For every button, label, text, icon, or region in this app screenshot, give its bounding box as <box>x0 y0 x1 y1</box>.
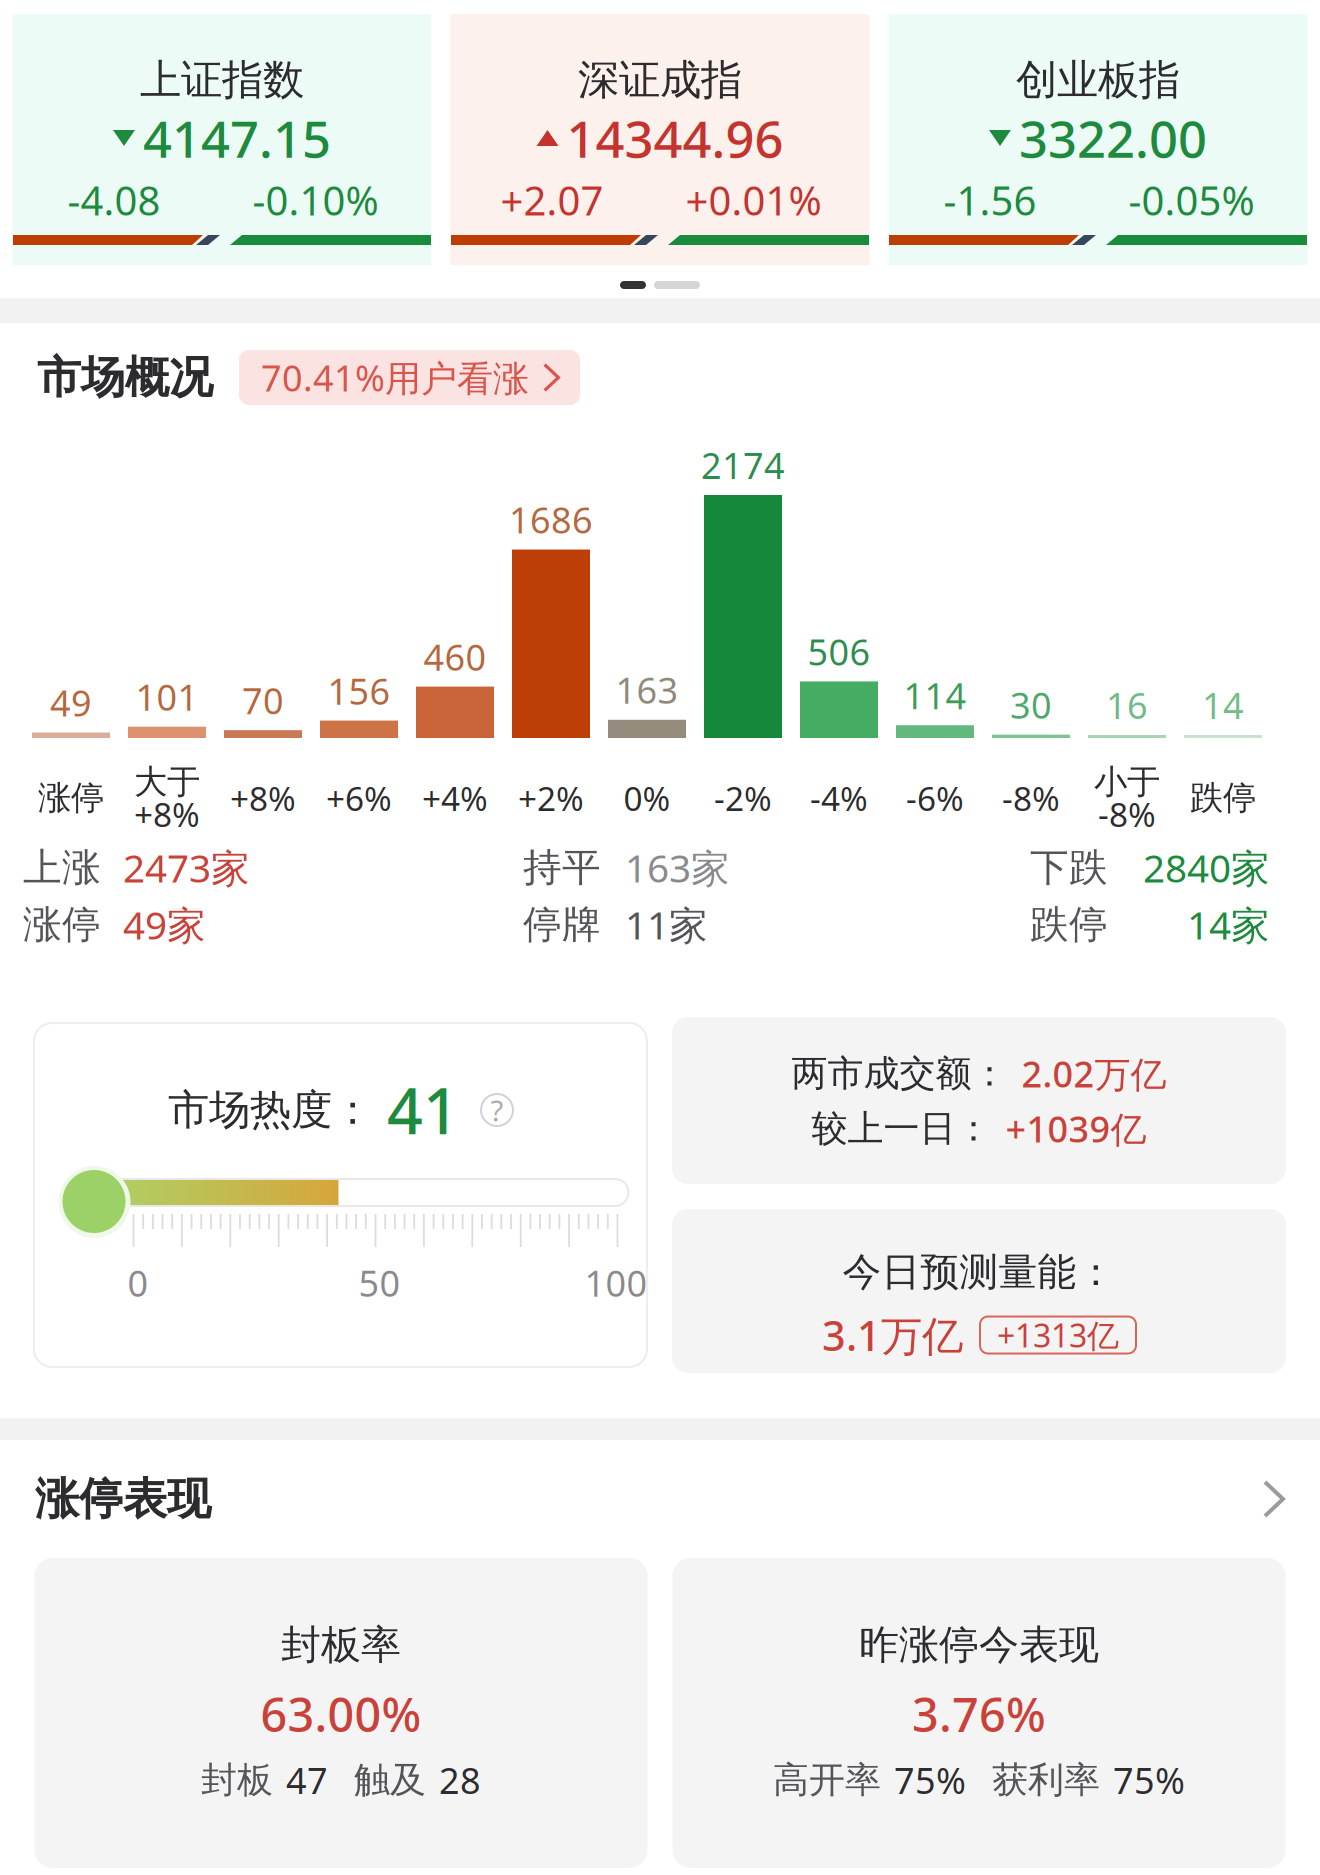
staticText: 涨停 <box>38 777 104 818</box>
staticText: 14344.96 <box>566 104 783 172</box>
staticText: 2.02万亿 <box>1021 1050 1166 1097</box>
staticText: 封板率 <box>281 1620 401 1669</box>
staticText: 2174 <box>701 441 785 489</box>
staticText: 163 <box>615 666 678 714</box>
staticText: 上证指数 <box>140 55 304 105</box>
staticText: 0% <box>623 776 670 820</box>
staticText: 1686 <box>509 496 593 543</box>
staticText: 2840家 <box>1143 842 1270 893</box>
button[interactable]: 创业板指 <box>888 14 1307 265</box>
staticText: 75% <box>1113 1756 1185 1804</box>
staticText: 70 <box>242 676 284 724</box>
staticText: 小于 <box>1094 761 1160 802</box>
staticText: 0 <box>127 1259 148 1307</box>
staticText: 70.41%用户看涨 <box>261 354 529 401</box>
staticText: 163家 <box>625 842 730 893</box>
button[interactable]: 上证指数 <box>12 14 431 265</box>
staticText: +1313亿 <box>997 1314 1119 1356</box>
staticText: +6% <box>326 776 392 820</box>
staticText: -1.56 <box>943 173 1036 226</box>
staticText: 涨停表现 <box>35 1472 211 1526</box>
staticText: -6% <box>906 776 964 820</box>
staticText: 较上一日： <box>811 1106 991 1151</box>
staticText: 28 <box>439 1756 481 1804</box>
staticText: 获利率 <box>992 1758 1100 1802</box>
staticText: -8% <box>1002 776 1060 820</box>
staticText: 涨停 <box>23 901 101 948</box>
staticText: 3.76% <box>912 1683 1046 1745</box>
button[interactable]: 封板率 <box>34 1558 647 1868</box>
staticText: 创业板指 <box>1016 55 1180 105</box>
button[interactable]: 昨涨停今表现 <box>672 1558 1285 1868</box>
staticText: 昨涨停今表现 <box>859 1620 1099 1669</box>
staticText: 63.00% <box>260 1683 421 1745</box>
staticText: ? <box>490 1090 503 1129</box>
staticText: +1039亿 <box>1005 1105 1146 1152</box>
staticText: 156 <box>327 667 390 715</box>
staticText: -4% <box>810 776 868 820</box>
staticText: 14家 <box>1187 899 1270 950</box>
staticText: 506 <box>807 628 870 675</box>
staticText: 持平 <box>523 844 601 891</box>
staticText: 市场热度： <box>168 1085 373 1135</box>
staticText: -8% <box>1098 792 1156 836</box>
staticText: 下跌 <box>1030 844 1108 891</box>
staticText: 41 <box>387 1068 459 1152</box>
staticText: 3322.00 <box>1019 104 1207 172</box>
staticText: 触及 <box>354 1758 426 1802</box>
staticText: 深证成指 <box>578 55 742 105</box>
staticText: 47 <box>286 1756 328 1804</box>
staticText: 封板 <box>201 1758 273 1802</box>
staticText: 停牌 <box>523 901 601 948</box>
staticText: 16 <box>1106 681 1148 729</box>
staticText: 2473家 <box>123 842 250 893</box>
staticText: +8% <box>134 792 200 836</box>
staticText: -0.05% <box>1128 173 1254 226</box>
staticText: 30 <box>1010 681 1052 729</box>
staticText: 101 <box>135 673 198 721</box>
staticText: +8% <box>230 776 296 820</box>
staticText: 75% <box>894 1756 966 1804</box>
staticText: 3.1万亿 <box>822 1308 963 1362</box>
button[interactable]: 70.41%用户看涨 <box>239 350 580 405</box>
staticText: 14 <box>1202 681 1244 729</box>
button[interactable]: 涨停表现 <box>35 1440 1285 1558</box>
staticText: 49 <box>50 679 92 726</box>
staticText: 高开率 <box>773 1758 881 1802</box>
staticText: 11家 <box>625 899 708 950</box>
staticText: 上涨 <box>23 844 101 891</box>
staticText: 4147.15 <box>143 104 331 172</box>
staticText: 大于 <box>134 761 200 802</box>
staticText: 460 <box>423 633 486 681</box>
staticText: 114 <box>903 671 966 719</box>
staticText: +2% <box>518 776 584 820</box>
staticText: 100 <box>584 1259 647 1307</box>
staticText: 两市成交额： <box>791 1051 1007 1096</box>
staticText: +4% <box>422 776 488 820</box>
staticText: +0.01% <box>685 173 821 226</box>
staticText: 49家 <box>123 899 206 950</box>
staticText: 跌停 <box>1030 901 1108 948</box>
staticText: -0.10% <box>252 173 378 226</box>
staticText: 市场概况 <box>37 350 213 404</box>
staticText: 跌停 <box>1190 777 1256 818</box>
staticText: +2.07 <box>500 173 603 226</box>
staticText: 50 <box>358 1259 400 1307</box>
staticText: -2% <box>714 776 772 820</box>
staticText: 今日预测量能： <box>842 1248 1115 1296</box>
button[interactable]: 深证成指 <box>450 14 869 265</box>
staticText: -4.08 <box>67 173 160 226</box>
